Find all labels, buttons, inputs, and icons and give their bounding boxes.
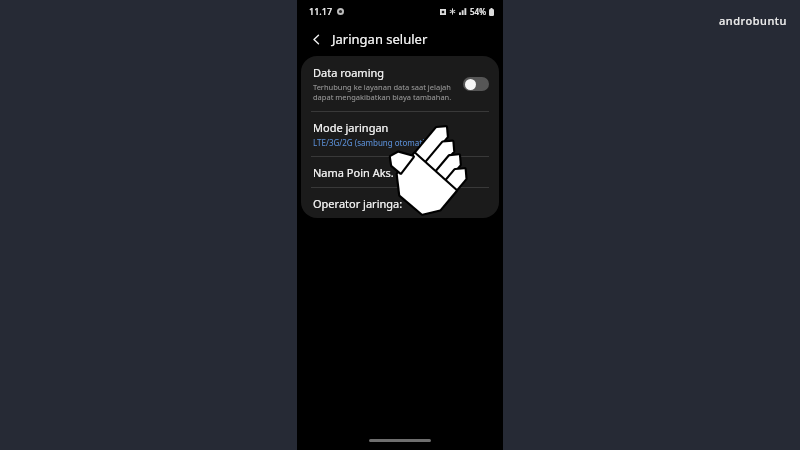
button[interactable]: Nama Poin Aks. (301, 157, 499, 187)
staticText: dapat mengakibatkan biaya tambahan. (313, 92, 452, 102)
staticText: androbuntu (719, 13, 787, 28)
button[interactable]: Data roaming (301, 56, 499, 111)
staticText: LTE/3G/2G (sambung otomatis) (313, 137, 431, 148)
staticText: 11.17 (309, 5, 333, 17)
other: Tap pointer (387, 124, 473, 212)
staticText: Terhubung ke layanan data saat jelajah (313, 82, 451, 92)
staticText: Data roaming (313, 65, 385, 80)
button[interactable]: Mode jaringan (301, 112, 499, 156)
staticText: 54% (470, 6, 486, 17)
staticText: Operator jaringa: (313, 196, 403, 211)
staticText: Mode jaringan (313, 120, 389, 135)
staticText: Jaringan seluler (332, 30, 428, 48)
staticText: Nama Poin Aks. (313, 165, 394, 180)
button[interactable]: Operator jaringa: (301, 188, 499, 218)
button[interactable]: Back (305, 28, 327, 50)
button[interactable]: Data roaming toggle (463, 77, 489, 91)
